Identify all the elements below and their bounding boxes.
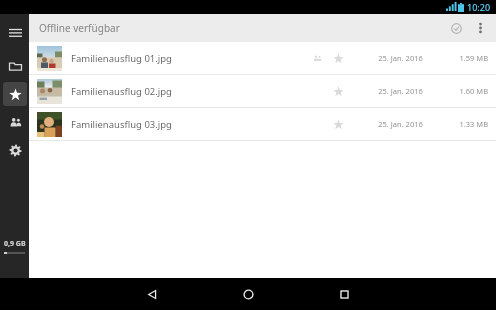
button[interactable]: Familienausflug 02.jpg bbox=[29, 75, 496, 108]
staticText: 25. Jan. 2016 bbox=[378, 86, 423, 96]
staticText: 1.59 MB bbox=[459, 53, 488, 63]
button[interactable]: Menu bbox=[3, 20, 27, 44]
button[interactable]: Recent apps bbox=[322, 279, 366, 309]
staticText: 25. Jan. 2016 bbox=[378, 119, 423, 129]
staticText: Familienausflug 01.jpg bbox=[71, 52, 308, 65]
staticText: 0,9 GB bbox=[4, 239, 26, 249]
staticText: 25. Jan. 2016 bbox=[378, 53, 423, 63]
staticText: 10:20 bbox=[467, 1, 491, 13]
button[interactable]: Folders bbox=[3, 54, 27, 78]
button[interactable]: Back bbox=[130, 279, 174, 309]
button[interactable]: Familienausflug 03.jpg bbox=[29, 108, 496, 141]
button[interactable]: Home bbox=[226, 279, 270, 309]
staticText: Familienausflug 03.jpg bbox=[71, 118, 308, 131]
staticText: 1.33 MB bbox=[459, 119, 488, 129]
button[interactable]: Shared with me bbox=[3, 110, 27, 134]
button[interactable]: Familienausflug 01.jpg bbox=[29, 42, 496, 75]
button[interactable]: More options bbox=[468, 16, 492, 40]
button[interactable]: Offline available bbox=[444, 16, 468, 40]
staticText: Offline verfügbar bbox=[39, 21, 120, 35]
button[interactable]: Settings bbox=[3, 138, 27, 162]
staticText: Familienausflug 02.jpg bbox=[71, 85, 308, 98]
button[interactable]: Starred bbox=[3, 82, 27, 106]
staticText: 1.60 MB bbox=[459, 86, 488, 96]
